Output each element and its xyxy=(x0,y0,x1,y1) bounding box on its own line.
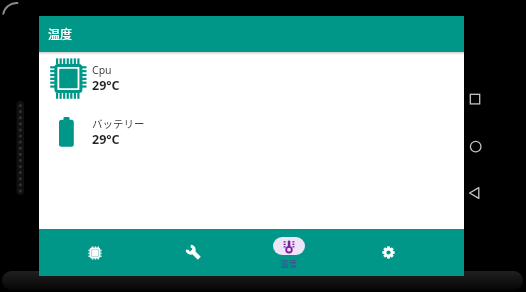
staticText: 温度 xyxy=(280,257,298,269)
button[interactable] xyxy=(68,229,122,276)
staticText: 29°C xyxy=(92,77,120,94)
staticText: バッテリー xyxy=(92,116,145,131)
button[interactable] xyxy=(166,229,220,276)
button[interactable]: バッテリー xyxy=(39,105,464,158)
button[interactable] xyxy=(361,229,415,276)
button[interactable]: 温度 xyxy=(262,229,316,276)
button[interactable]: Cpu xyxy=(39,52,464,105)
staticText: Cpu xyxy=(92,63,112,77)
staticText: 29°C xyxy=(92,131,120,148)
staticText: 温度 xyxy=(48,25,73,42)
